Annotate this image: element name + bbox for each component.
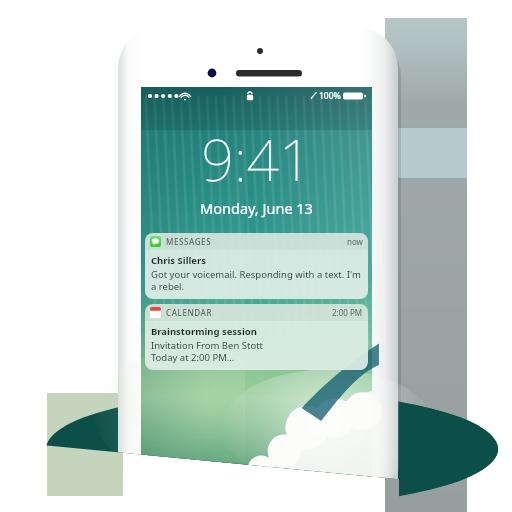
staticText: Chris Sillers [151, 254, 207, 267]
staticText: 9:41 [141, 120, 372, 198]
staticText: Monday, June 13 [141, 198, 372, 218]
staticText: Invitation From Ben Stott Today at 2:00 … [151, 339, 263, 364]
staticText: CALENDAR [166, 307, 213, 318]
other: Calendar [150, 307, 161, 318]
button[interactable]: Messages [145, 233, 368, 299]
staticText: 100% [319, 90, 341, 102]
staticText: MESSAGES [166, 236, 212, 247]
staticText: Got your voicemail. Responding with a te… [151, 268, 362, 293]
staticText: 2:00 PM [332, 307, 363, 318]
other: Messages [150, 236, 161, 247]
button[interactable]: Calendar [145, 304, 368, 370]
staticText: Brainstorming session [151, 325, 257, 338]
staticText: now [347, 236, 363, 247]
